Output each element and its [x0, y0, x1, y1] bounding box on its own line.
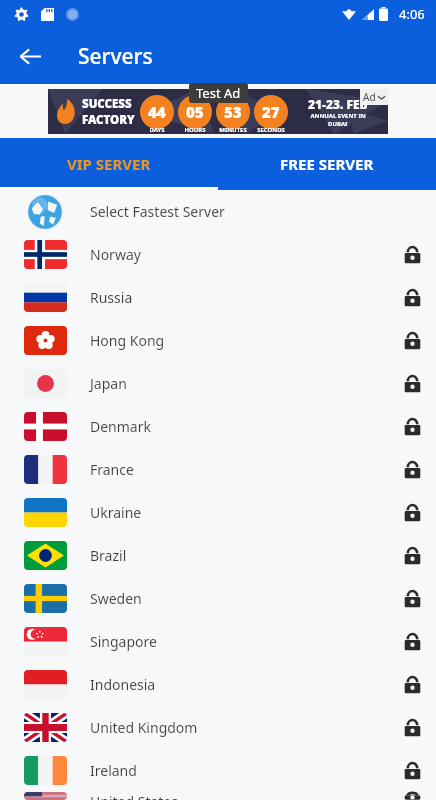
staticText: DAYS — [149, 126, 165, 134]
button[interactable]: Singapore — [0, 620, 436, 663]
button[interactable]: SUCCESS — [48, 89, 388, 134]
staticText: 53 — [224, 102, 242, 122]
button[interactable]: United States — [0, 792, 436, 800]
button[interactable]: Back — [7, 33, 53, 79]
staticText: Ireland — [90, 761, 388, 780]
staticText: ANNUAL EVENT IN — [310, 112, 366, 120]
staticText: Ad — [363, 90, 376, 104]
staticText: Russia — [90, 288, 388, 307]
button[interactable]: Russia — [0, 276, 436, 319]
staticText: Sweden — [90, 589, 388, 608]
staticText: SECONDS — [257, 126, 285, 134]
other: Locked server — [388, 534, 436, 577]
staticText: VIP SERVER — [67, 154, 151, 174]
staticText: DUBAI — [328, 120, 348, 128]
staticText: Hong Kong — [90, 331, 388, 350]
staticText: Singapore — [90, 632, 388, 651]
staticText: Brazil — [90, 546, 388, 565]
staticText: HOURS — [184, 126, 206, 134]
button[interactable]: Hong Kong — [0, 319, 436, 362]
staticText: Denmark — [90, 417, 388, 436]
button[interactable]: FREE SERVER — [218, 138, 436, 190]
staticText: Select Fastest Server — [90, 202, 388, 221]
other: Locked server — [388, 491, 436, 534]
button[interactable]: Ireland — [0, 749, 436, 792]
other: Locked server — [388, 448, 436, 491]
staticText: 21-23. FEB — [308, 96, 368, 112]
staticText: United Kingdom — [90, 718, 388, 737]
button[interactable]: Denmark — [0, 405, 436, 448]
staticText: Indonesia — [90, 675, 388, 694]
staticText: MINUTES — [219, 126, 247, 134]
staticText: 44 — [148, 102, 166, 122]
other: Locked server — [388, 362, 436, 405]
staticText: France — [90, 460, 388, 479]
button[interactable]: Indonesia — [0, 663, 436, 706]
other: Locked server — [388, 233, 436, 276]
staticText: Servers — [78, 42, 153, 71]
other: Locked server — [388, 276, 436, 319]
other: Locked server — [388, 792, 436, 800]
button[interactable]: Ad choices — [363, 90, 385, 104]
other: Locked server — [388, 319, 436, 362]
other: Locked server — [388, 577, 436, 620]
button[interactable]: United Kingdom — [0, 706, 436, 749]
staticText: FACTORY — [82, 112, 135, 128]
staticText: 27 — [262, 102, 280, 122]
staticText: 05 — [186, 102, 204, 122]
button[interactable]: Select Fastest Server — [0, 190, 436, 233]
other: Locked server — [388, 405, 436, 448]
other: Locked server — [388, 749, 436, 792]
button[interactable]: Norway — [0, 233, 436, 276]
staticText: Norway — [90, 245, 388, 264]
other: Locked server — [388, 620, 436, 663]
button[interactable]: VIP SERVER — [0, 138, 218, 190]
staticText: 4:06 — [399, 5, 425, 23]
staticText: SUCCESS — [82, 96, 132, 112]
button[interactable]: Sweden — [0, 577, 436, 620]
button[interactable]: France — [0, 448, 436, 491]
other: Locked server — [388, 663, 436, 706]
staticText: Japan — [90, 374, 388, 393]
staticText: Test Ad — [196, 84, 241, 102]
staticText: United States — [90, 792, 388, 800]
other: Locked server — [388, 706, 436, 749]
staticText: FREE SERVER — [280, 154, 374, 174]
staticText: Ukraine — [90, 503, 388, 522]
button[interactable]: Brazil — [0, 534, 436, 577]
button[interactable]: Ukraine — [0, 491, 436, 534]
button[interactable]: Japan — [0, 362, 436, 405]
